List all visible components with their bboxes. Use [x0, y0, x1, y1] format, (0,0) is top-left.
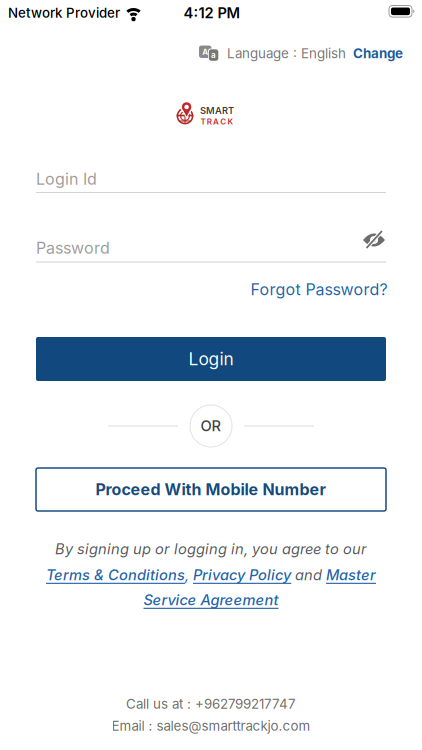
staticText: a: [211, 50, 216, 60]
button[interactable]: Change: [353, 46, 403, 61]
staticText: Call us at : +962799217747: [126, 696, 296, 712]
staticText: SMART: [200, 105, 234, 116]
staticText: Login Id: [36, 170, 97, 188]
staticText: Service Agreement: [143, 591, 278, 609]
button[interactable]: Forgot Password?: [250, 280, 387, 299]
button[interactable]: Terms & Conditions: [46, 566, 185, 584]
button[interactable]: Master: [326, 566, 376, 584]
button[interactable]: Service Agreement: [143, 591, 278, 609]
staticText: Forgot Password?: [250, 280, 387, 299]
staticText: A: [202, 47, 208, 56]
staticText: OR: [200, 417, 221, 435]
staticText: ,: [185, 566, 193, 584]
button[interactable]: Show password: [362, 230, 386, 249]
staticText: and: [291, 566, 326, 584]
staticText: Language : English: [227, 46, 346, 61]
staticText: By signing up or logging in, you agree t…: [55, 540, 367, 558]
staticText: Login: [188, 349, 233, 369]
staticText: Email : sales@smarttrackjo.com: [111, 718, 310, 734]
staticText: Password: [36, 239, 110, 257]
button[interactable]: Login Id: [36, 164, 386, 194]
button[interactable]: Login: [36, 337, 386, 381]
button[interactable]: Password: [36, 233, 386, 263]
staticText: Network Provider: [8, 5, 120, 21]
staticText: TRACK: [200, 117, 233, 126]
staticText: Terms & Conditions: [46, 566, 185, 584]
button[interactable]: Proceed With Mobile Number: [36, 468, 386, 511]
button[interactable]: Privacy Policy: [193, 566, 291, 584]
staticText: 4:12 PM: [183, 4, 240, 22]
staticText: Proceed With Mobile Number: [95, 480, 326, 499]
staticText: Privacy Policy: [193, 566, 291, 584]
staticText: Change: [353, 46, 403, 61]
staticText: Master: [326, 566, 376, 584]
